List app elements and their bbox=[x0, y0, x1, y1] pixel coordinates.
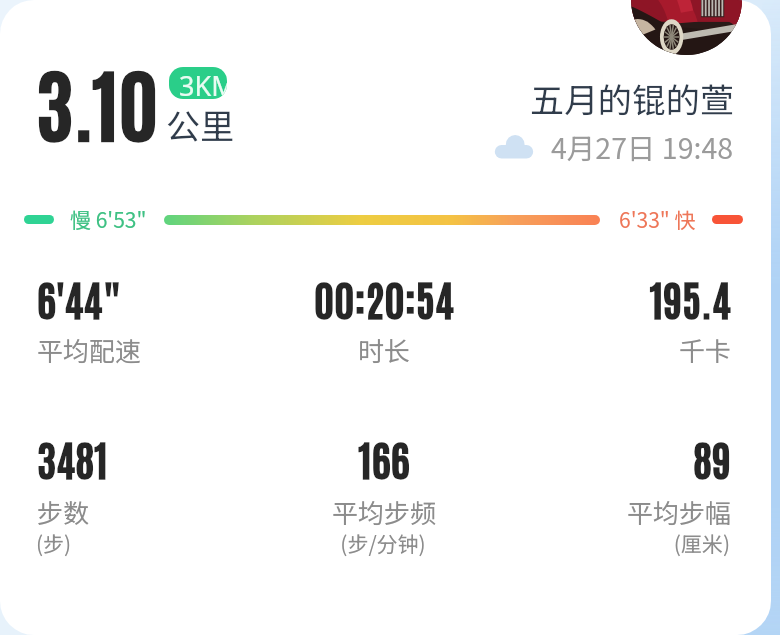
staticText: 时长 bbox=[39, 331, 729, 369]
button[interactable]: 89 bbox=[42, 432, 732, 557]
staticText: (步) bbox=[36, 528, 726, 558]
staticText: 4月27日 19:48 bbox=[551, 126, 734, 167]
staticText: 6'33" 快 bbox=[619, 204, 696, 234]
staticText: 平均配速 bbox=[37, 331, 727, 369]
button[interactable]: 3KM bbox=[169, 67, 227, 99]
staticText: 195.4 bbox=[41, 272, 731, 325]
staticText: 166 bbox=[39, 432, 729, 485]
staticText: 慢 6'53" bbox=[70, 204, 147, 234]
staticText: (厘米) bbox=[40, 528, 730, 558]
button[interactable]: Profile avatar bbox=[631, 0, 742, 55]
button[interactable]: 00:20:54 bbox=[40, 272, 730, 367]
staticText: 千卡 bbox=[41, 331, 731, 369]
button[interactable]: 195.4 bbox=[42, 272, 732, 367]
staticText: 步数 bbox=[37, 493, 727, 531]
staticText: 平均步幅 bbox=[41, 493, 731, 531]
staticText: 3KM bbox=[179, 67, 227, 99]
button[interactable]: 166 bbox=[40, 432, 730, 557]
staticText: 89 bbox=[41, 432, 731, 485]
staticText: (步/分钟) bbox=[38, 528, 728, 558]
button[interactable]: 6'44" bbox=[38, 272, 728, 367]
button[interactable]: 3481 bbox=[38, 432, 728, 557]
staticText: 平均步频 bbox=[39, 493, 729, 531]
staticText: 00:20:54 bbox=[39, 272, 729, 325]
staticText: 6'44" bbox=[37, 272, 727, 325]
staticText: 3481 bbox=[37, 432, 727, 485]
staticText: 公里 bbox=[166, 100, 234, 149]
staticText: 3.10 bbox=[36, 49, 159, 153]
staticText: 五月的锟的萱 bbox=[530, 74, 734, 123]
